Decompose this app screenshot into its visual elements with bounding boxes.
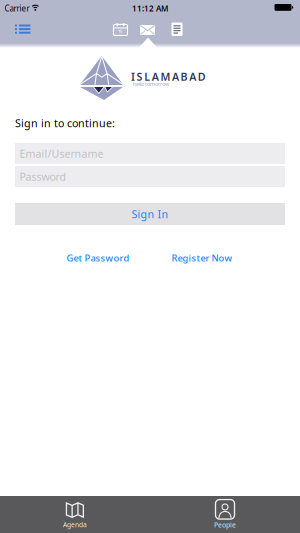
staticText: I <box>131 69 135 84</box>
button[interactable]: Calendar <box>113 22 127 35</box>
staticText: Sign in to continue: <box>15 116 115 130</box>
button[interactable]: Register Now <box>104 251 300 264</box>
staticText: B <box>181 69 188 84</box>
staticText: Agenda <box>63 520 87 529</box>
button[interactable]: Menu <box>15 24 30 34</box>
staticText: 11:12 AM <box>132 3 168 14</box>
staticText: People <box>214 521 236 529</box>
staticText: 15 <box>118 28 122 34</box>
button[interactable]: Documents <box>171 22 182 36</box>
staticText: A <box>189 69 196 84</box>
staticText: Get Password <box>66 252 129 264</box>
staticText: S <box>137 69 143 84</box>
button[interactable]: Sign In <box>15 203 285 225</box>
staticText: A <box>152 69 159 84</box>
staticText: hello tomorrow <box>133 80 169 88</box>
button[interactable]: Agenda <box>0 496 150 533</box>
staticText: Register Now <box>171 252 232 264</box>
button[interactable]: Get Password <box>0 251 196 264</box>
staticText: L <box>144 69 150 84</box>
button[interactable]: People <box>150 496 300 533</box>
staticText: M <box>160 69 170 84</box>
staticText: D <box>198 69 206 84</box>
staticText: Sign In <box>131 207 168 221</box>
staticText: A <box>172 69 179 84</box>
staticText: Email/Username <box>19 146 103 161</box>
staticText: Carrier <box>4 3 29 14</box>
staticText: Password <box>19 169 66 184</box>
button[interactable]: Mail <box>140 25 155 35</box>
